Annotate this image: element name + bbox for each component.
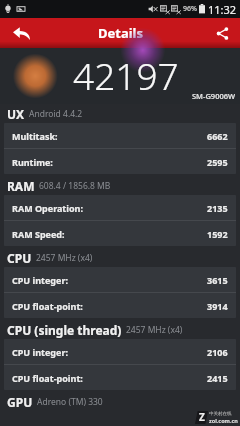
button[interactable]: Multitask: xyxy=(4,123,236,148)
staticText: CPU integer: xyxy=(12,274,68,286)
staticText: Runtime: xyxy=(12,156,53,168)
staticText: CPU integer: xyxy=(12,346,68,358)
staticText: CPU (single thread) xyxy=(7,322,122,338)
staticText: CPU float-point: xyxy=(12,300,83,312)
button[interactable]: Share xyxy=(204,18,240,48)
button[interactable]: CPU integer: xyxy=(4,267,236,292)
button[interactable]: CPU float-point: xyxy=(4,365,236,390)
staticText: 11:32 xyxy=(208,2,237,17)
staticText: 42197 xyxy=(73,50,179,100)
staticText: 608.4 / 1856.8 MB xyxy=(39,180,111,192)
staticText: zol.com.cn xyxy=(209,417,238,424)
staticText: SM-G9006W xyxy=(192,91,236,101)
staticText: CPU float-point: xyxy=(12,372,83,384)
staticText: 96% xyxy=(183,4,197,14)
staticText: 2106 xyxy=(207,346,228,358)
staticText: 2135 xyxy=(207,202,228,214)
staticText: 2457 MHz (x4) xyxy=(126,324,183,336)
staticText: Adreno (TM) 330 xyxy=(37,396,103,408)
staticText: Android 4.4.2 xyxy=(29,108,83,120)
staticText: CPU xyxy=(7,250,32,266)
staticText: 6662 xyxy=(207,130,228,142)
button[interactable]: Runtime: xyxy=(4,149,236,174)
staticText: 3914 xyxy=(207,300,228,312)
button[interactable]: RAM Operation: xyxy=(4,195,236,220)
staticText: Details xyxy=(98,24,143,42)
button[interactable]: RAM Speed: xyxy=(4,221,236,246)
staticText: 2457 MHz (x4) xyxy=(36,252,93,264)
staticText: 中关村在线 xyxy=(209,411,232,417)
staticText: Multitask: xyxy=(12,130,58,142)
staticText: RAM Operation: xyxy=(12,202,83,214)
button[interactable]: Back xyxy=(0,18,42,48)
staticText: Z xyxy=(199,410,205,424)
staticText: GPU xyxy=(7,394,33,410)
staticText: 2595 xyxy=(207,156,228,168)
button[interactable]: CPU float-point: xyxy=(4,293,236,318)
staticText: 1592 xyxy=(207,228,228,240)
staticText: RAM xyxy=(7,178,35,194)
button[interactable]: CPU integer: xyxy=(4,339,236,364)
staticText: 3615 xyxy=(207,274,228,286)
staticText: RAM Speed: xyxy=(12,228,65,240)
staticText: UX xyxy=(7,106,25,122)
staticText: 2415 xyxy=(207,372,228,384)
